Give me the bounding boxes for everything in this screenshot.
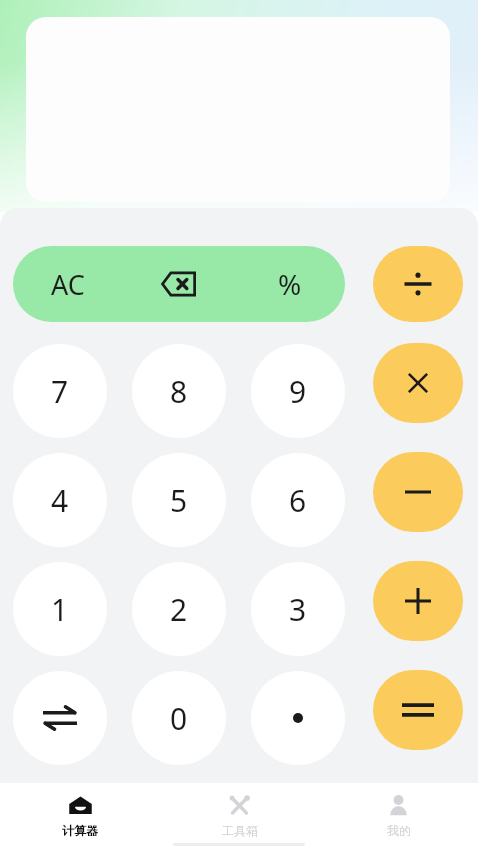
- button[interactable]: 5: [132, 453, 226, 547]
- button[interactable]: 9: [251, 344, 345, 438]
- staticText: 1: [51, 589, 69, 630]
- staticText: 2: [170, 589, 188, 630]
- button[interactable]: Equals: [373, 670, 463, 750]
- staticText: 8: [170, 371, 188, 412]
- staticText: %: [278, 265, 302, 303]
- button[interactable]: %: [235, 246, 345, 322]
- button[interactable]: AC: [13, 246, 123, 322]
- button[interactable]: 4: [13, 453, 107, 547]
- staticText: AC: [51, 266, 85, 303]
- button[interactable]: 8: [132, 344, 226, 438]
- staticText: 7: [51, 371, 69, 412]
- button[interactable]: Multiply: [373, 343, 463, 423]
- staticText: 3: [289, 589, 307, 630]
- button[interactable]: [251, 671, 345, 765]
- staticText: 工具箱: [222, 823, 258, 838]
- button[interactable]: Divide: [373, 246, 463, 322]
- staticText: 9: [289, 371, 307, 412]
- button[interactable]: 2: [132, 562, 226, 656]
- button[interactable]: 我的: [319, 783, 478, 838]
- button[interactable]: 计算器: [0, 783, 160, 838]
- staticText: 计算器: [62, 823, 98, 838]
- button[interactable]: Swap: [13, 671, 107, 765]
- button[interactable]: 0: [132, 671, 226, 765]
- button[interactable]: 6: [251, 453, 345, 547]
- staticText: 0: [170, 698, 188, 739]
- button[interactable]: Backspace: [123, 246, 235, 322]
- staticText: 我的: [387, 823, 411, 838]
- staticText: 4: [51, 480, 69, 521]
- staticText: 5: [170, 480, 188, 521]
- button[interactable]: Add: [373, 561, 463, 641]
- button[interactable]: 1: [13, 562, 107, 656]
- staticText: 6: [289, 480, 307, 521]
- button[interactable]: 7: [13, 344, 107, 438]
- button[interactable]: Subtract: [373, 452, 463, 532]
- button[interactable]: 3: [251, 562, 345, 656]
- button[interactable]: 工具箱: [160, 783, 319, 838]
